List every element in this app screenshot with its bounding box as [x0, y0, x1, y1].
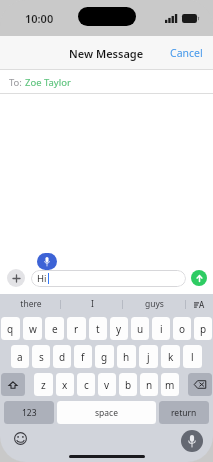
button[interactable]: Emoji	[12, 430, 28, 446]
button[interactable]: j	[139, 345, 158, 368]
button[interactable]: q	[1, 317, 20, 340]
button[interactable]: Dictation	[181, 430, 203, 452]
button[interactable]: y	[110, 317, 128, 340]
button[interactable]: Dictate	[37, 253, 57, 270]
staticText: Cancel	[170, 46, 203, 60]
staticText: s	[39, 350, 44, 364]
button[interactable]: Send	[191, 270, 207, 286]
staticText: z	[41, 378, 46, 392]
staticText: v	[104, 378, 110, 392]
staticText: return	[171, 407, 197, 419]
staticText: d	[59, 350, 66, 364]
button[interactable]: m	[161, 373, 179, 396]
button[interactable]: s	[32, 345, 50, 368]
staticText: i	[160, 322, 163, 336]
staticText: Hi	[37, 272, 47, 285]
button[interactable]: r	[67, 317, 86, 340]
staticText: h	[123, 350, 130, 364]
staticText: t	[96, 322, 100, 336]
button[interactable]: z	[34, 373, 53, 396]
staticText: o	[179, 322, 186, 336]
staticText: guys	[145, 298, 164, 310]
staticText: 10:00	[25, 11, 54, 26]
button[interactable]: p	[194, 317, 212, 340]
button[interactable]: I	[61, 294, 123, 314]
staticText: x	[62, 378, 68, 392]
button[interactable]: b	[119, 373, 137, 396]
button[interactable]: o	[173, 317, 191, 340]
button[interactable]: w	[23, 317, 42, 340]
button[interactable]: space	[57, 401, 156, 424]
button[interactable]: return	[159, 401, 209, 424]
staticText: m	[165, 378, 175, 392]
staticText: g	[101, 350, 108, 364]
button[interactable]: a	[11, 345, 29, 368]
staticText: w	[29, 322, 37, 336]
staticText: q	[7, 322, 14, 336]
button[interactable]: c	[77, 373, 95, 396]
button[interactable]: k	[161, 345, 180, 368]
button[interactable]: e	[45, 317, 64, 340]
button[interactable]: t	[89, 317, 107, 340]
button[interactable]: guys	[123, 294, 185, 314]
button[interactable]: v	[98, 373, 116, 396]
staticText: p	[200, 322, 207, 336]
button[interactable]: there	[0, 294, 61, 314]
staticText: r	[74, 322, 79, 336]
staticText: Zoe Taylor	[25, 76, 71, 89]
button[interactable]: l	[183, 345, 202, 368]
staticText: e	[52, 322, 58, 336]
button[interactable]: 123	[4, 401, 54, 424]
button[interactable]: Hi	[31, 270, 186, 287]
staticText: 123	[22, 407, 37, 419]
staticText: a	[17, 350, 23, 364]
staticText: k	[168, 350, 174, 364]
staticText: there	[20, 298, 42, 310]
button[interactable]: Cancel	[160, 40, 213, 66]
staticText: y	[116, 322, 122, 336]
button[interactable]: g	[95, 345, 114, 368]
staticText: b	[125, 378, 132, 392]
button[interactable]: u	[131, 317, 149, 340]
button[interactable]: h	[117, 345, 136, 368]
staticText: u	[137, 322, 144, 336]
button[interactable]: Shift	[1, 373, 25, 396]
staticText: A	[199, 299, 205, 310]
staticText: New Message	[69, 46, 144, 61]
staticText: l	[191, 350, 194, 364]
button[interactable]: Formatting	[185, 294, 213, 314]
button[interactable]: n	[140, 373, 158, 396]
button[interactable]: d	[53, 345, 71, 368]
staticText: f	[81, 350, 85, 364]
button[interactable]: Add attachment	[7, 269, 25, 287]
staticText: n	[146, 378, 153, 392]
staticText: To:	[9, 76, 22, 89]
staticText: space	[95, 407, 118, 419]
button[interactable]: f	[74, 345, 92, 368]
button[interactable]: x	[56, 373, 74, 396]
staticText: I	[91, 298, 94, 310]
button[interactable]: Backspace	[188, 373, 212, 396]
staticText: c	[84, 378, 89, 392]
button[interactable]: To:	[0, 70, 213, 94]
button[interactable]: i	[152, 317, 170, 340]
staticText: j	[147, 350, 150, 364]
